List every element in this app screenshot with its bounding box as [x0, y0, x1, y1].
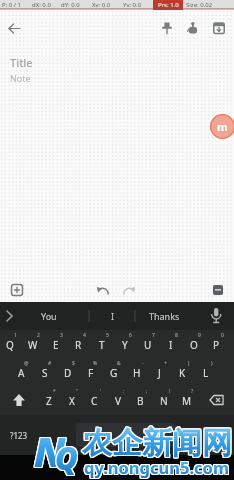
- button[interactable]: R: [67, 331, 90, 359]
- button[interactable]: T: [90, 331, 113, 359]
- staticText: E: [53, 338, 59, 352]
- staticText: dX: 0.0: [32, 1, 51, 9]
- staticText: B: [137, 394, 144, 408]
- staticText: Q: [56, 436, 79, 478]
- button[interactable]: C: [83, 387, 106, 415]
- button[interactable]: G: [102, 359, 125, 387]
- button[interactable]: [76, 423, 176, 447]
- staticText: P: 0 / 1: [2, 1, 22, 9]
- staticText: qy.nongcun5.com: [84, 455, 229, 477]
- button[interactable]: m: [210, 114, 234, 139]
- staticText: ?: [191, 388, 194, 395]
- button[interactable]: [160, 21, 174, 35]
- staticText: 农企新闻网: [82, 424, 232, 462]
- staticText: qy.nongcun5.com: [83, 457, 228, 479]
- button[interactable]: E: [44, 331, 67, 359]
- staticText: @: [24, 360, 29, 367]
- staticText: O: [190, 338, 198, 352]
- staticText: #: [48, 360, 52, 367]
- button[interactable]: F: [79, 359, 102, 387]
- staticText: 0: [221, 332, 224, 339]
- staticText: C: [91, 394, 98, 408]
- button[interactable]: M: [175, 387, 198, 415]
- staticText: Q: [56, 438, 79, 480]
- button[interactable]: [212, 21, 226, 35]
- staticText: 农企新闻网: [82, 425, 232, 463]
- staticText: Prs: 1.0: [158, 1, 179, 9]
- staticText: L: [203, 366, 209, 380]
- staticText: N: [160, 394, 168, 408]
- button[interactable]: [6, 387, 32, 415]
- button[interactable]: K: [171, 359, 194, 387]
- button[interactable]: [10, 283, 24, 297]
- button[interactable]: J: [148, 359, 171, 387]
- staticText: 4: [83, 332, 86, 339]
- staticText: V: [115, 394, 121, 408]
- staticText: Title: [10, 55, 33, 70]
- button[interactable]: [204, 302, 228, 330]
- staticText: M: [182, 394, 192, 408]
- button[interactable]: U: [136, 331, 159, 359]
- button[interactable]: Y: [113, 331, 136, 359]
- staticText: A: [18, 366, 25, 380]
- staticText: You: [41, 310, 57, 322]
- staticText: qy.nongcun5.com: [83, 455, 228, 477]
- button[interactable]: H: [125, 359, 148, 387]
- button[interactable]: X: [60, 387, 83, 415]
- staticText: Thanks: [149, 310, 180, 322]
- staticText: N: [34, 423, 66, 477]
- button[interactable]: [204, 387, 230, 415]
- staticText: 1: [14, 332, 17, 339]
- staticText: X: [69, 394, 75, 408]
- button[interactable]: You: [28, 302, 70, 330]
- staticText: Z: [46, 394, 52, 408]
- staticText: Q: [55, 438, 78, 480]
- button[interactable]: S: [33, 359, 56, 387]
- button[interactable]: L: [194, 359, 217, 387]
- button[interactable]: O: [182, 331, 205, 359]
- staticText: 7: [152, 332, 155, 339]
- button[interactable]: D: [56, 359, 79, 387]
- staticText: m: [217, 119, 228, 134]
- staticText: N: [35, 425, 67, 479]
- button[interactable]: Q: [0, 331, 21, 359]
- staticText: S: [42, 366, 48, 380]
- button[interactable]: V: [106, 387, 129, 415]
- button[interactable]: I: [159, 331, 182, 359]
- staticText: 农企新闻网: [82, 423, 232, 461]
- button[interactable]: [6, 20, 24, 38]
- button[interactable]: [212, 284, 224, 296]
- staticText: $: [72, 360, 75, 367]
- button[interactable]: P: [205, 331, 228, 359]
- staticText: Q: [56, 437, 79, 479]
- button[interactable]: Thanks: [138, 302, 190, 330]
- staticText: *: [53, 388, 56, 395]
- staticText: Size: 0.02: [186, 1, 213, 9]
- button[interactable]: [122, 284, 136, 298]
- staticText: ): [211, 360, 213, 367]
- staticText: qy.nongcun5.com: [85, 457, 230, 479]
- staticText: G: [110, 366, 118, 380]
- staticText: 8: [175, 332, 178, 339]
- staticText: T: [99, 338, 105, 352]
- staticText: 9: [198, 332, 201, 339]
- staticText: 5: [106, 332, 109, 339]
- staticText: Q: [54, 436, 77, 478]
- button[interactable]: W: [21, 331, 44, 359]
- staticText: D: [64, 366, 72, 380]
- button[interactable]: ?123: [0, 415, 38, 455]
- staticText: :: [123, 388, 125, 395]
- button[interactable]: [96, 284, 110, 298]
- button[interactable]: B: [129, 387, 152, 415]
- staticText: F: [88, 366, 94, 380]
- button[interactable]: [186, 21, 200, 35]
- staticText: -: [142, 360, 144, 367]
- button[interactable]: N: [152, 387, 175, 415]
- staticText: +: [164, 360, 167, 367]
- staticText: qy.nongcun5.com: [84, 457, 229, 479]
- button[interactable]: Z: [37, 387, 60, 415]
- button[interactable]: A: [10, 359, 33, 387]
- button[interactable]: [0, 302, 20, 330]
- staticText: R: [75, 338, 82, 352]
- button[interactable]: I: [96, 302, 130, 330]
